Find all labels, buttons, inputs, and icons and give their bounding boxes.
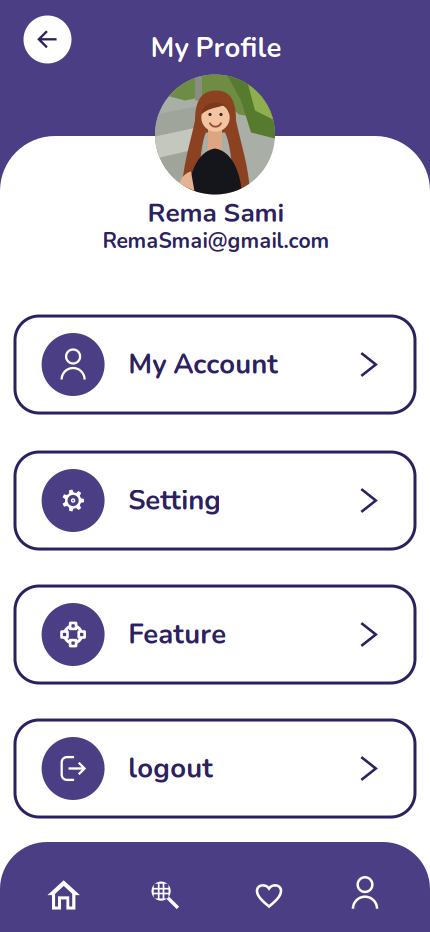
button[interactable]: Feature [15, 586, 415, 683]
staticText: My Profile [150, 29, 281, 67]
button[interactable]: Search [115, 860, 215, 930]
staticText: Feature [128, 616, 226, 653]
staticText: RemaSmai@gmail.com [102, 226, 329, 255]
button[interactable]: Favorites [219, 860, 319, 930]
staticText: My Account [128, 346, 278, 383]
button[interactable]: My Account [15, 316, 415, 413]
staticText: Rema Sami [147, 195, 284, 231]
button[interactable]: Back [23, 15, 71, 63]
staticText: logout [128, 750, 213, 787]
button[interactable]: Profile [315, 858, 415, 928]
button[interactable]: Home [14, 860, 114, 930]
button[interactable]: Setting [15, 452, 415, 549]
staticText: Setting [128, 482, 221, 519]
button[interactable]: logout [15, 720, 415, 817]
